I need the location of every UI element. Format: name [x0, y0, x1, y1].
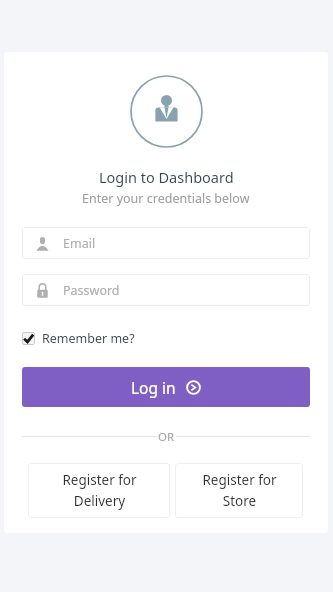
button[interactable]: Register for Delivery — [28, 463, 170, 518]
staticText: Login to Dashboard — [99, 167, 234, 187]
other: Log in — [186, 380, 201, 395]
button[interactable]: Email — [22, 227, 310, 259]
staticText: Enter your credentials below — [82, 190, 250, 207]
button[interactable]: Log in — [22, 367, 310, 407]
staticText: Register for Delivery — [62, 471, 137, 510]
staticText: Register for Store — [202, 471, 277, 510]
button[interactable]: Remember me? — [22, 330, 135, 347]
staticText: Email — [63, 235, 96, 252]
staticText: Remember me? — [42, 330, 135, 347]
staticText: Password — [63, 282, 120, 299]
staticText: Log in — [131, 377, 176, 398]
button[interactable]: Register for Store — [175, 463, 303, 518]
staticText: OR — [158, 429, 175, 443]
button[interactable]: Password — [22, 274, 310, 306]
